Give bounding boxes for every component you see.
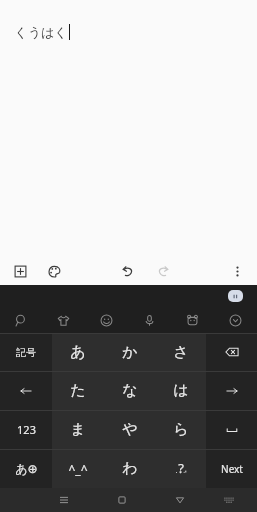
button[interactable]: あ⊕ bbox=[0, 449, 52, 488]
button[interactable]: ま bbox=[52, 410, 104, 449]
button[interactable]: Recents bbox=[47, 488, 81, 512]
button[interactable]: か bbox=[104, 333, 155, 371]
staticText: ? bbox=[178, 459, 184, 475]
button[interactable]: Cursor right bbox=[206, 371, 257, 410]
staticText: Next bbox=[221, 462, 243, 476]
button[interactable]: Punctuation bbox=[155, 449, 206, 488]
button[interactable]: Stickers bbox=[42, 307, 85, 333]
staticText: ら bbox=[173, 420, 189, 439]
button[interactable]: 記号 bbox=[0, 333, 52, 371]
staticText: や bbox=[122, 420, 138, 439]
button[interactable]: Hide keyboard bbox=[212, 488, 246, 512]
button[interactable]: Redo bbox=[152, 260, 174, 282]
button[interactable]: Undo bbox=[116, 260, 138, 282]
button[interactable]: ^_^ bbox=[52, 449, 104, 488]
button[interactable]: わ bbox=[104, 449, 155, 488]
button[interactable]: Voice input bbox=[128, 307, 171, 333]
button[interactable]: Next bbox=[206, 449, 257, 488]
staticText: あ⊕ bbox=[15, 461, 38, 476]
button[interactable]: Clipboard bbox=[228, 290, 243, 302]
button[interactable]: Expand bbox=[214, 307, 257, 333]
staticText: ま bbox=[70, 420, 86, 439]
button[interactable]: た bbox=[52, 371, 104, 410]
staticText: あ bbox=[70, 343, 86, 362]
button[interactable]: More options bbox=[226, 260, 248, 282]
button[interactable]: Backspace bbox=[206, 333, 257, 371]
button[interactable]: Search bbox=[0, 307, 42, 333]
button[interactable]: ら bbox=[155, 410, 206, 449]
staticText: な bbox=[122, 381, 138, 400]
staticText: 123 bbox=[17, 422, 36, 437]
button[interactable]: や bbox=[104, 410, 155, 449]
button[interactable]: さ bbox=[155, 333, 206, 371]
button[interactable]: は bbox=[155, 371, 206, 410]
button[interactable]: 123 bbox=[0, 410, 52, 449]
button[interactable]: Space bbox=[206, 410, 257, 449]
staticText: た bbox=[70, 381, 86, 400]
staticText: は bbox=[173, 381, 189, 400]
button[interactable]: あ bbox=[52, 333, 104, 371]
staticText: さ bbox=[173, 343, 189, 362]
staticText: くうはく bbox=[14, 24, 68, 40]
button[interactable]: Format bbox=[43, 260, 65, 282]
button[interactable]: Avatar stickers bbox=[171, 307, 214, 333]
staticText: わ bbox=[122, 459, 138, 478]
staticText: か bbox=[122, 343, 138, 362]
staticText: 記号 bbox=[16, 346, 36, 359]
button[interactable]: Back bbox=[163, 488, 197, 512]
button[interactable]: Home bbox=[105, 488, 139, 512]
staticText: ^_^ bbox=[68, 461, 88, 477]
button[interactable]: Emoji bbox=[85, 307, 128, 333]
button[interactable]: Insert bbox=[9, 260, 31, 282]
button[interactable]: Cursor left bbox=[0, 371, 52, 410]
button[interactable]: な bbox=[104, 371, 155, 410]
